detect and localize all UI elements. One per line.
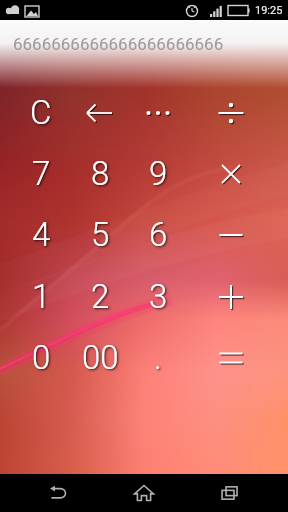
button[interactable]: 0 <box>12 327 70 388</box>
button[interactable]: Multiply <box>195 143 267 204</box>
other: Backspace <box>83 96 117 130</box>
button[interactable]: 8 <box>71 143 129 204</box>
button[interactable]: 1 <box>12 266 70 327</box>
button[interactable]: Backspace <box>71 82 129 143</box>
button[interactable]: Equals <box>195 327 267 388</box>
other: More options <box>141 96 175 130</box>
button[interactable]: 9 <box>129 143 187 204</box>
staticText: 2 <box>91 277 110 316</box>
other: Equals <box>214 341 248 375</box>
other: Divide <box>214 96 248 130</box>
other: Home <box>133 482 155 504</box>
button[interactable]: 2 <box>71 266 129 327</box>
staticText: 3 <box>149 277 168 316</box>
other: Add <box>214 280 248 314</box>
button[interactable]: 3 <box>129 266 187 327</box>
staticText: C <box>30 93 52 132</box>
staticText: 6666666666666666666666 <box>13 34 224 54</box>
button[interactable]: Home <box>116 474 172 512</box>
staticText: . <box>154 338 162 377</box>
staticText: 8 <box>91 154 110 193</box>
button[interactable]: 7 <box>12 143 70 204</box>
other: Recent apps <box>219 482 241 504</box>
button[interactable]: C <box>12 82 70 143</box>
other: Multiply <box>214 157 248 191</box>
staticText: 7 <box>32 154 51 193</box>
other: Back <box>47 482 69 504</box>
staticText: 9 <box>149 154 168 193</box>
staticText: 19:25 <box>255 4 283 17</box>
button[interactable]: More options <box>129 82 187 143</box>
staticText: 0 <box>32 338 51 377</box>
staticText: 1 <box>32 277 51 316</box>
button[interactable]: 00 <box>71 327 129 388</box>
button[interactable]: 5 <box>71 204 129 265</box>
button[interactable]: Divide <box>195 82 267 143</box>
button[interactable]: 6 <box>129 204 187 265</box>
button[interactable]: . <box>129 327 187 388</box>
staticText: 5 <box>91 215 110 254</box>
button[interactable]: Back <box>30 474 86 512</box>
staticText: 00 <box>82 338 119 377</box>
button[interactable]: Recent apps <box>202 474 258 512</box>
other: Subtract <box>214 218 248 252</box>
staticText: 6 <box>149 215 168 254</box>
button[interactable]: 4 <box>12 204 70 265</box>
button[interactable]: Subtract <box>195 204 267 265</box>
staticText: 4 <box>32 215 51 254</box>
button[interactable]: Add <box>195 266 267 327</box>
